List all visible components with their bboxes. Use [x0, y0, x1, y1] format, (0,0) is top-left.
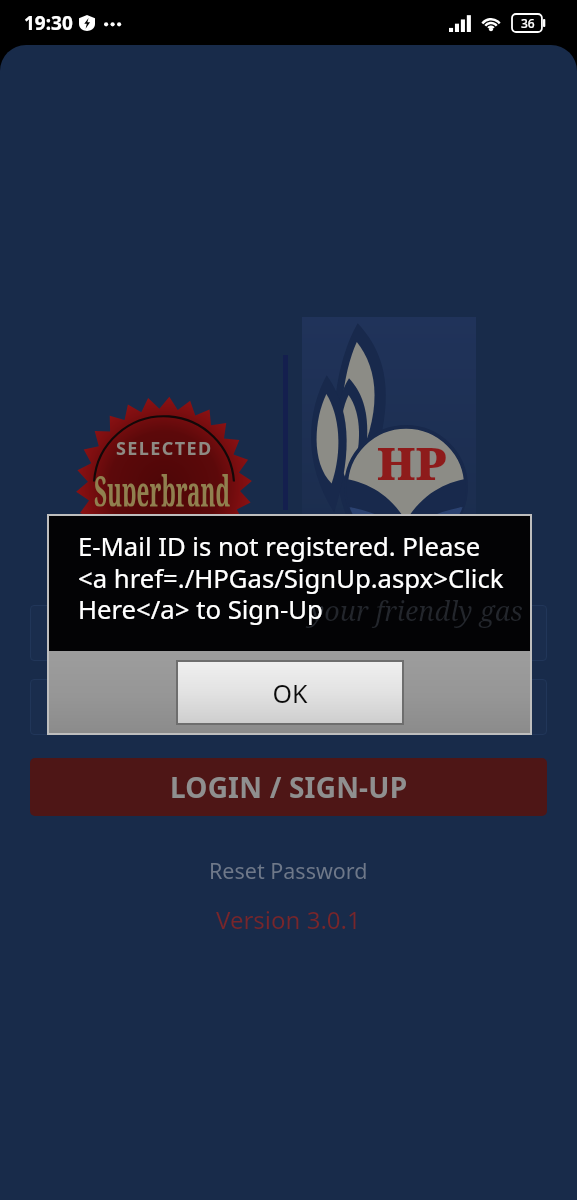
- staticText: your friendly gas: [308, 594, 521, 631]
- staticText: 19:30: [24, 10, 73, 36]
- button[interactable]: Reset Password: [195, 850, 382, 891]
- staticText: OK: [272, 676, 308, 710]
- staticText: SELECTED: [116, 436, 213, 461]
- staticText: your friendly gas: [310, 592, 523, 629]
- staticText: HP: [377, 431, 447, 494]
- button[interactable]: LOGIN / SIGN-UP: [30, 758, 547, 816]
- staticText: LOGIN / SIGN-UP: [170, 768, 408, 806]
- staticText: Superbrand: [94, 461, 234, 507]
- staticText: E-Mail ID is not registered. Please <a h…: [78, 529, 504, 626]
- staticText: Version 3.0.1: [216, 903, 361, 936]
- button[interactable]: OK: [178, 662, 402, 723]
- button[interactable]: [30, 605, 547, 661]
- button[interactable]: [30, 679, 547, 735]
- staticText: Reset Password: [209, 856, 368, 885]
- staticText: 36: [521, 15, 535, 31]
